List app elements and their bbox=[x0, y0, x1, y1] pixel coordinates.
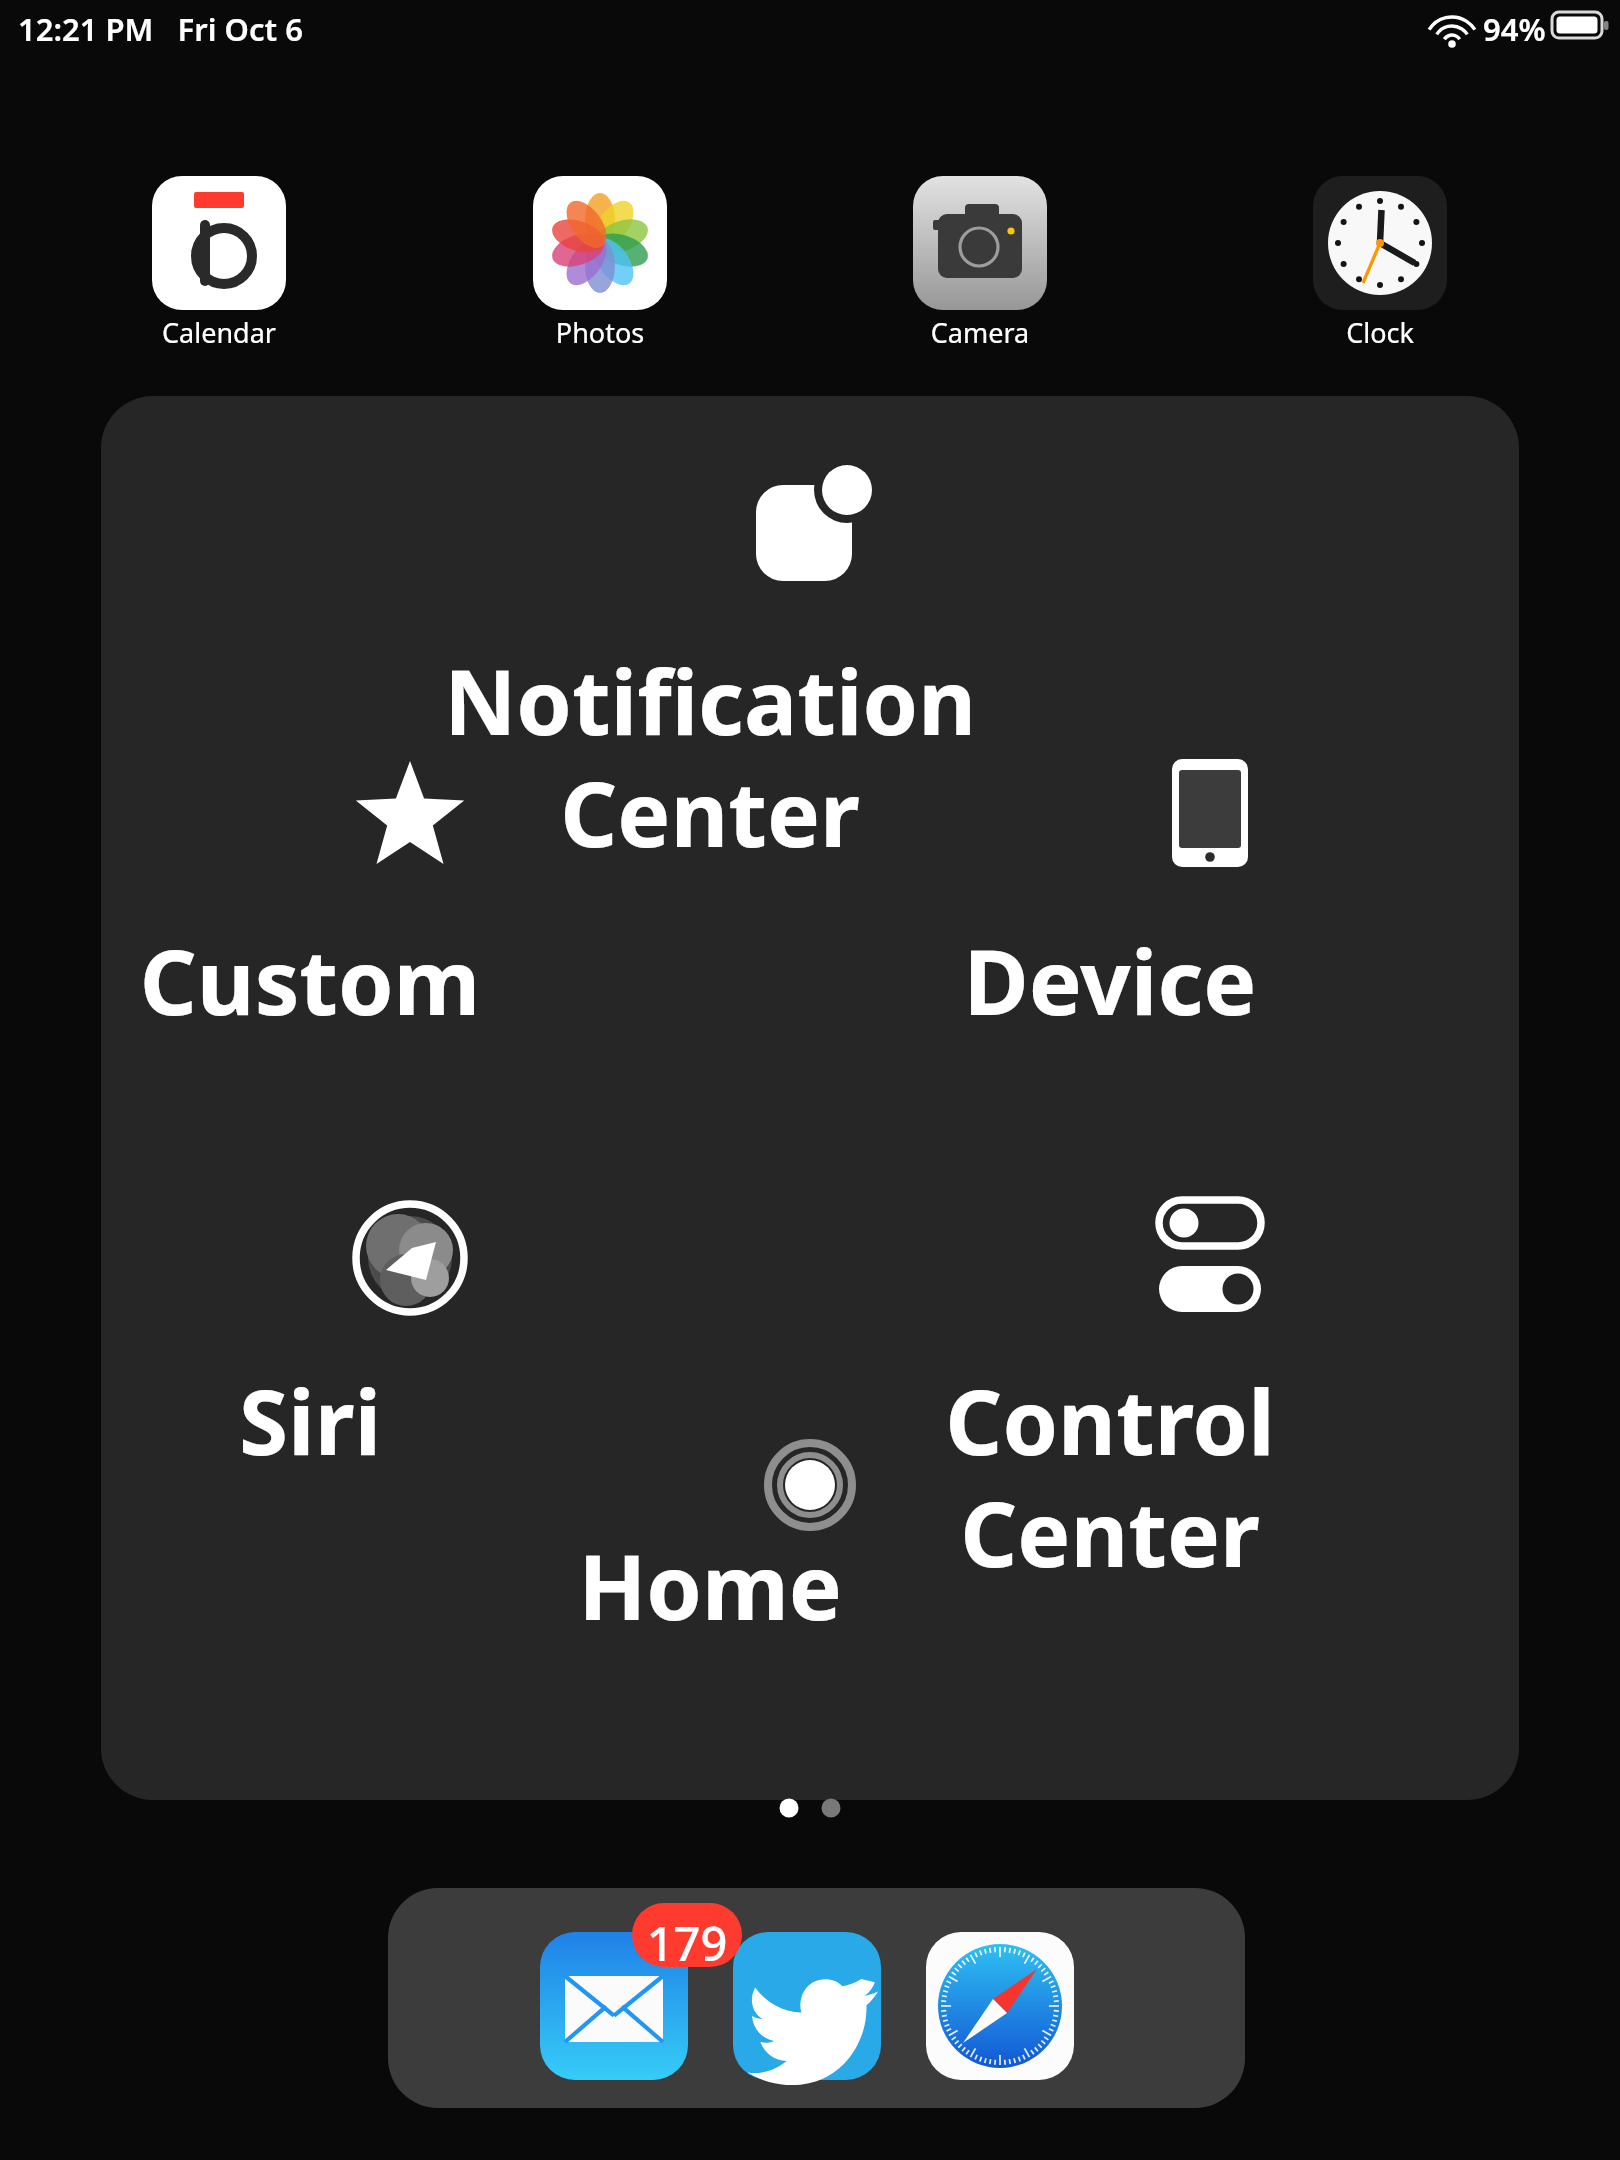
button[interactable]: Device bbox=[910, 743, 1510, 1032]
staticText: Photos bbox=[533, 314, 667, 348]
button[interactable]: Twitter bbox=[730, 1920, 890, 2080]
staticText: Control bbox=[810, 1360, 1410, 1468]
button[interactable]: Clock bbox=[1313, 176, 1447, 346]
staticText: Clock bbox=[1313, 314, 1447, 348]
staticText: Siri bbox=[10, 1360, 610, 1468]
button[interactable]: Safari bbox=[923, 1920, 1083, 2080]
button[interactable]: Home bbox=[510, 1415, 1110, 1637]
staticText: 94% bbox=[1483, 8, 1546, 50]
button[interactable]: Notification Center bbox=[510, 463, 1110, 864]
button[interactable]: Mail bbox=[537, 1920, 697, 2080]
staticText: Center bbox=[410, 752, 1010, 860]
staticText: Home bbox=[410, 1525, 1010, 1633]
button[interactable]: Photos bbox=[533, 176, 667, 346]
button[interactable]: Siri bbox=[110, 1188, 710, 1472]
staticText: Device bbox=[810, 920, 1410, 1028]
staticText: Center bbox=[810, 1472, 1410, 1580]
button[interactable]: Control Center bbox=[910, 1188, 1510, 1584]
staticText: 179 bbox=[632, 1911, 742, 1963]
staticText: Custom bbox=[10, 920, 610, 1028]
button[interactable]: Calendar bbox=[152, 176, 286, 346]
staticText: Calendar bbox=[152, 314, 286, 348]
button[interactable]: Camera bbox=[913, 176, 1047, 346]
button[interactable]: Custom bbox=[110, 745, 710, 1032]
staticText: Camera bbox=[913, 314, 1047, 348]
staticText: Notification bbox=[410, 640, 1010, 748]
staticText: 12:21 PM Fri Oct 6 bbox=[18, 8, 303, 50]
